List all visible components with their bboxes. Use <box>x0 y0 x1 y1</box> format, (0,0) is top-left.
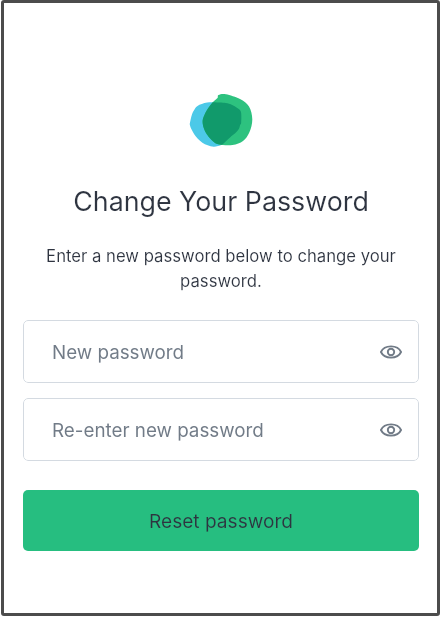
staticText: Change Your Password <box>73 185 369 217</box>
button[interactable]: Show password <box>377 416 405 444</box>
button[interactable]: Show password <box>377 338 405 366</box>
button[interactable]: Re-enter new password <box>23 398 419 461</box>
staticText: Re-enter new password <box>52 419 377 442</box>
staticText: New password <box>52 341 377 364</box>
staticText: Enter a new password below to change you… <box>42 246 400 291</box>
button[interactable]: New password <box>23 320 419 383</box>
button[interactable]: Reset password <box>23 490 419 551</box>
staticText: Reset password <box>149 509 294 532</box>
